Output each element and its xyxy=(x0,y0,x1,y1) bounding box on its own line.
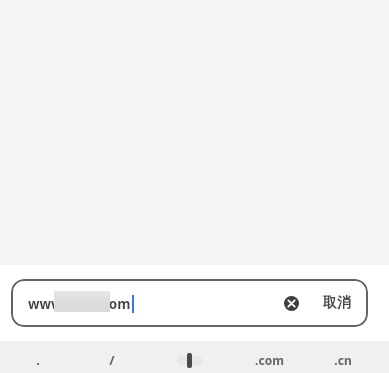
staticText: .com xyxy=(255,352,284,368)
staticText: 取消 xyxy=(323,294,351,312)
staticText: / xyxy=(109,351,115,369)
staticText: www.abcd.com xyxy=(28,295,131,313)
staticText: .cn xyxy=(334,352,352,368)
button[interactable]: www.abcd.com xyxy=(11,279,368,327)
button[interactable]: Clear text xyxy=(277,289,305,317)
button[interactable]: .com xyxy=(231,347,307,373)
staticText: . xyxy=(36,351,40,369)
button[interactable]: / xyxy=(75,347,148,373)
button[interactable]: . xyxy=(0,347,75,373)
button[interactable]: .cn xyxy=(307,347,378,373)
button[interactable]: Move cursor xyxy=(148,347,231,373)
button[interactable]: 取消 xyxy=(317,279,357,327)
